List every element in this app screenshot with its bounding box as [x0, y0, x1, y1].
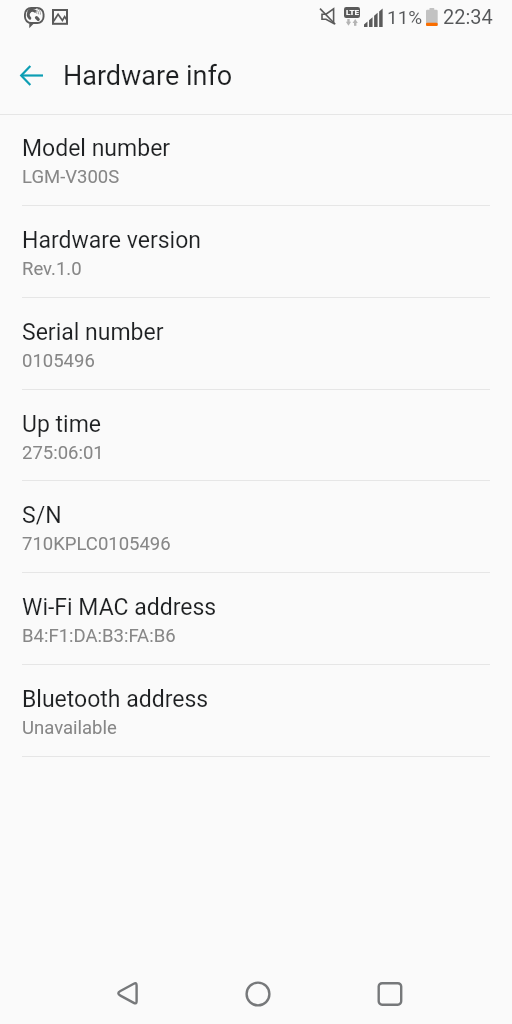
staticText: 0105496	[22, 350, 95, 372]
staticText: 710KPLC0105496	[22, 533, 171, 555]
button[interactable]: Back	[89, 956, 165, 1024]
button[interactable]: S/N	[0, 481, 512, 573]
button[interactable]: Up time	[0, 390, 512, 482]
staticText: Up time	[22, 411, 102, 438]
staticText: Serial number	[22, 319, 164, 346]
staticText: LGM-V300S	[22, 166, 120, 188]
button[interactable]: Navigate up	[5, 49, 57, 101]
staticText: Unavailable	[22, 717, 117, 739]
staticText: 11%	[387, 6, 423, 28]
staticText: Rev.1.0	[22, 258, 82, 280]
staticText: LTE	[346, 8, 359, 17]
staticText: Bluetooth address	[22, 686, 209, 713]
staticText: S/N	[22, 502, 62, 529]
button[interactable]: Hardware version	[0, 206, 512, 298]
staticText: Hardware version	[22, 227, 202, 254]
button[interactable]: Wi-Fi MAC address	[0, 573, 512, 665]
button[interactable]: Serial number	[0, 298, 512, 390]
button[interactable]: Bluetooth address	[0, 665, 512, 757]
button[interactable]: Home	[220, 956, 296, 1024]
staticText: Model number	[22, 135, 171, 162]
staticText: 275:06:01	[22, 442, 104, 464]
button[interactable]: Model number	[0, 114, 512, 206]
staticText: 22:34	[443, 5, 493, 28]
button[interactable]: Recent apps	[352, 956, 428, 1024]
staticText: Hardware info	[63, 60, 233, 92]
staticText: B4:F1:DA:B3:FA:B6	[22, 625, 176, 647]
staticText: Wi-Fi MAC address	[22, 594, 217, 621]
